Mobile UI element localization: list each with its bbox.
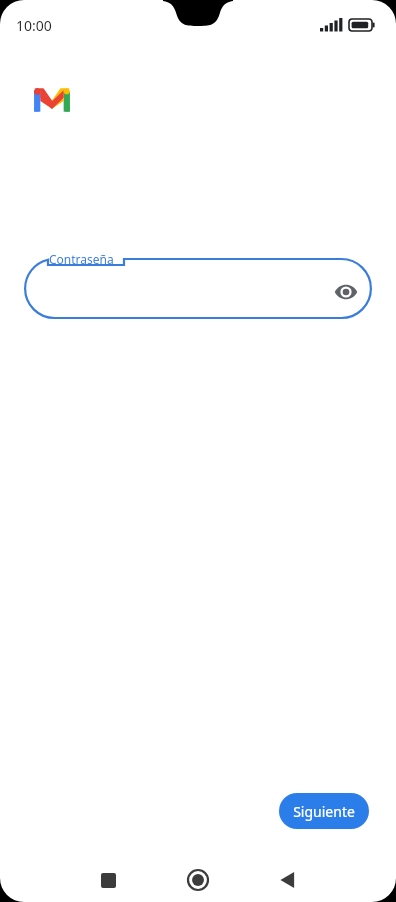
staticText: 10:00 — [16, 16, 52, 35]
staticText: Contraseña — [49, 251, 114, 267]
button[interactable]: Inicio — [176, 858, 220, 902]
button[interactable]: Mostrar contraseña — [326, 272, 366, 312]
button[interactable]: Contraseña — [24, 250, 372, 322]
button[interactable]: Siguiente — [279, 793, 369, 829]
button[interactable]: Atrás — [266, 858, 310, 902]
button[interactable]: Recientes — [86, 858, 130, 902]
button[interactable]: Gmail — [26, 74, 78, 126]
staticText: Siguiente — [293, 802, 355, 821]
